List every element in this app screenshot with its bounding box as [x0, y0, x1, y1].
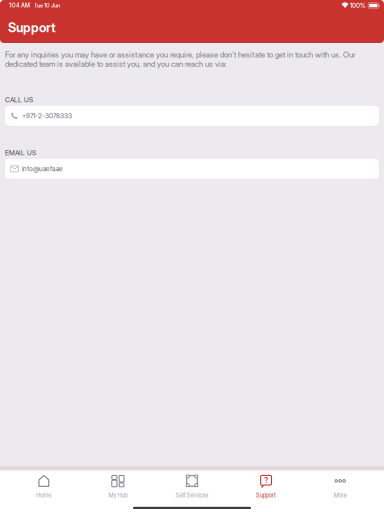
- staticText: Support: [256, 492, 276, 499]
- staticText: Tue 10 Jun: [34, 2, 60, 9]
- staticText: For any inquiries you may have or assist…: [5, 50, 355, 69]
- button[interactable]: More: [303, 470, 377, 500]
- button[interactable]: My Hub: [81, 470, 155, 500]
- button[interactable]: Support: [229, 470, 303, 500]
- button[interactable]: Email info@uaefa.ae: [5, 159, 379, 179]
- staticText: Home: [36, 492, 51, 499]
- staticText: Self Services: [175, 492, 208, 499]
- button[interactable]: Call +971-2-3078333: [5, 106, 379, 126]
- staticText: Support: [8, 20, 56, 35]
- staticText: info@uaefa.ae: [22, 165, 63, 173]
- staticText: CALL US: [5, 96, 33, 104]
- button[interactable]: Self Services: [155, 470, 229, 500]
- button[interactable]: Home: [7, 470, 81, 500]
- staticText: 1:04 AM: [9, 2, 30, 9]
- staticText: EMAIL US: [5, 149, 36, 157]
- staticText: +971-2-3078333: [22, 112, 72, 120]
- staticText: More: [334, 492, 347, 499]
- staticText: 100%: [350, 2, 366, 9]
- staticText: My Hub: [108, 492, 127, 499]
